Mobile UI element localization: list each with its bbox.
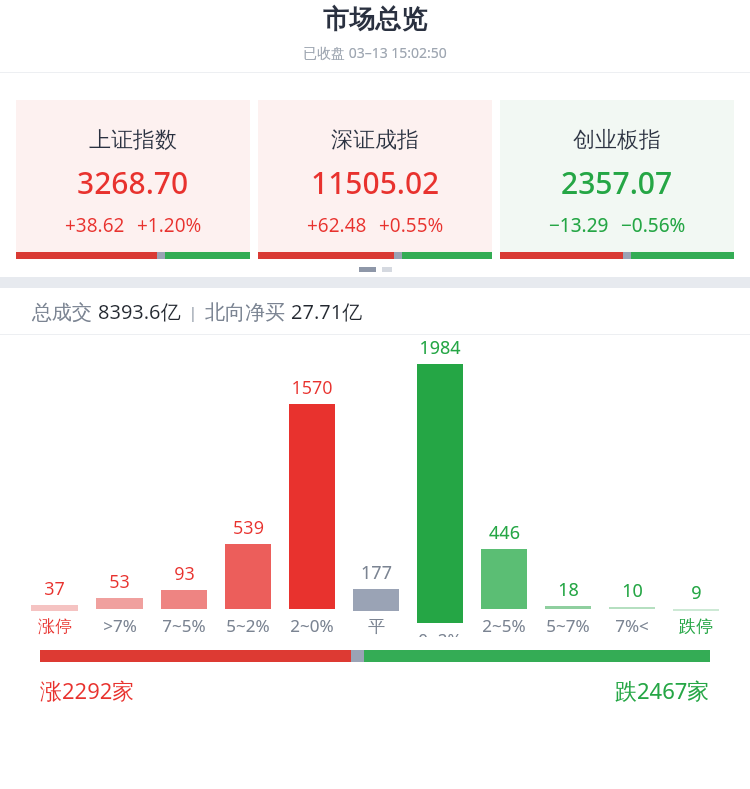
staticText: 2~0%: [290, 614, 334, 637]
staticText: 9: [691, 580, 702, 605]
button[interactable]: 创业板指: [500, 100, 734, 259]
staticText: 53: [109, 569, 130, 594]
staticText: |: [181, 302, 205, 322]
staticText: 446: [489, 520, 520, 545]
staticText: 涨停: [38, 616, 72, 637]
staticText: 已收盘 03–13 15:02:50: [303, 43, 447, 62]
staticText: 2357.07: [561, 162, 673, 203]
staticText: 1570: [291, 375, 333, 400]
staticText: 总成交: [32, 298, 98, 325]
staticText: 北向净买: [205, 298, 291, 325]
button[interactable]: 446: [472, 520, 536, 637]
staticText: 2~5%: [482, 614, 526, 637]
staticText: 市场总览: [323, 3, 427, 36]
staticText: 创业板指: [573, 126, 661, 154]
staticText: −0.56%: [621, 212, 686, 238]
staticText: 11505.02: [311, 162, 440, 203]
staticText: 93: [174, 561, 195, 586]
staticText: 27.71亿: [291, 298, 363, 325]
staticText: 177: [361, 560, 392, 585]
staticText: +0.55%: [379, 212, 444, 238]
staticText: 539: [233, 515, 264, 540]
staticText: 7%<: [615, 614, 649, 637]
button[interactable]: 37: [22, 576, 87, 637]
button[interactable]: 1570: [280, 375, 344, 637]
staticText: +38.62: [65, 212, 125, 238]
button[interactable]: 539: [216, 515, 280, 637]
staticText: 18: [558, 577, 579, 602]
staticText: 10: [622, 578, 643, 603]
button[interactable]: 10: [600, 578, 664, 637]
staticText: 7~5%: [162, 614, 206, 637]
staticText: >7%: [103, 614, 137, 637]
staticText: +62.48: [307, 212, 367, 238]
staticText: 37: [44, 576, 65, 601]
staticText: 平: [368, 616, 385, 637]
staticText: +1.20%: [137, 212, 202, 238]
button[interactable]: 18: [536, 577, 600, 637]
staticText: −13.29: [549, 212, 609, 238]
staticText: 涨2292家: [40, 675, 135, 705]
staticText: 0~2%: [418, 628, 462, 637]
staticText: 5~7%: [546, 614, 590, 637]
button[interactable]: 1984: [408, 335, 472, 637]
staticText: 上证指数: [89, 126, 177, 154]
staticText: 深证成指: [331, 126, 419, 154]
button[interactable]: 177: [344, 560, 408, 637]
staticText: 1984: [419, 335, 461, 360]
button[interactable]: 93: [152, 561, 216, 637]
button[interactable]: 9: [664, 580, 728, 637]
button[interactable]: 总成交: [0, 288, 750, 334]
button[interactable]: 上证指数: [16, 100, 250, 259]
button[interactable]: 53: [87, 569, 152, 637]
staticText: 跌2467家: [615, 675, 710, 705]
staticText: 跌停: [679, 616, 713, 637]
staticText: 8393.6亿: [98, 298, 181, 325]
button[interactable]: 深证成指: [258, 100, 492, 259]
staticText: 3268.70: [77, 162, 189, 203]
staticText: 5~2%: [226, 614, 270, 637]
